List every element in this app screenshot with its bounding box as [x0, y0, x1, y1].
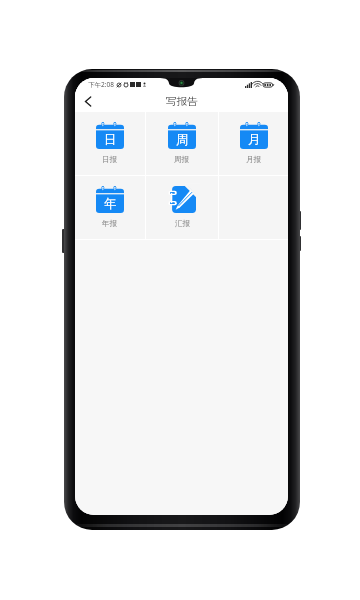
- button[interactable]: 年: [75, 176, 145, 239]
- staticText: 月报: [246, 155, 262, 165]
- staticText: 月: [248, 132, 261, 148]
- staticText: 年: [104, 196, 117, 212]
- button[interactable]: 周: [146, 112, 218, 175]
- button[interactable]: 月: [219, 112, 288, 175]
- button[interactable]: 日: [75, 112, 145, 175]
- staticText: 汇报: [175, 219, 191, 229]
- button[interactable]: Back: [75, 91, 101, 112]
- staticText: 周: [176, 132, 189, 148]
- staticText: 下午2:08: [88, 80, 114, 89]
- staticText: 年报: [102, 219, 118, 229]
- staticText: 写报告: [166, 95, 198, 108]
- staticText: 日: [104, 132, 117, 148]
- button[interactable]: 汇报: [146, 176, 218, 239]
- staticText: 周报: [174, 155, 190, 165]
- staticText: 日报: [102, 155, 118, 165]
